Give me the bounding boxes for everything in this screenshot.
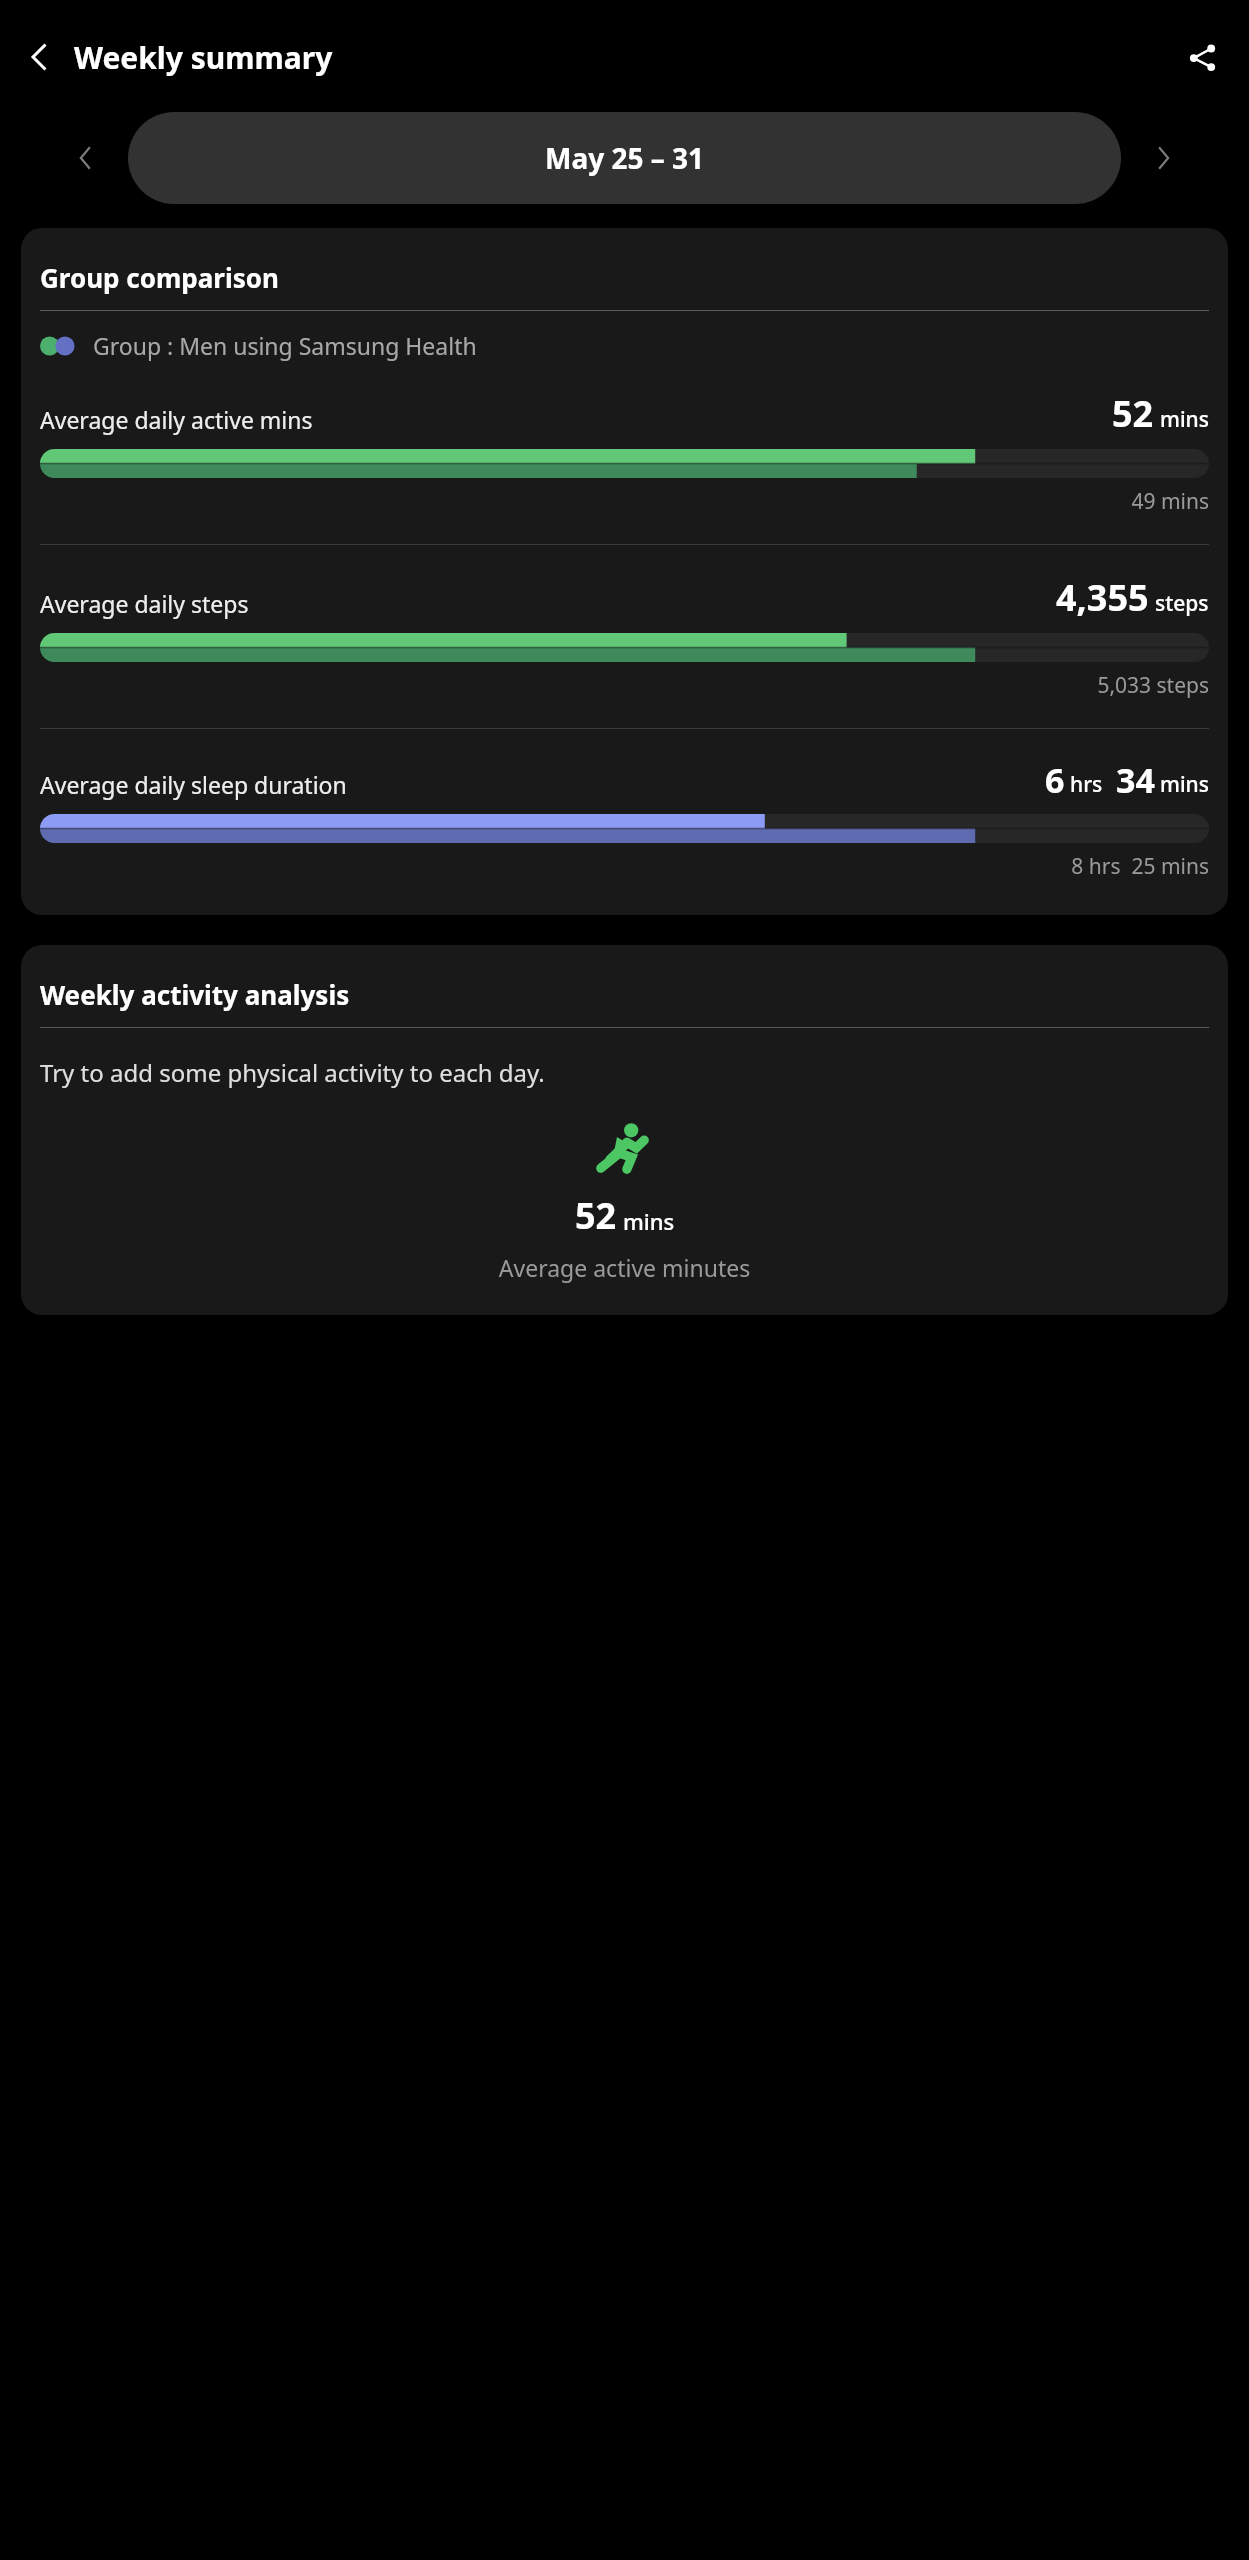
staticText: 4,355: [1056, 573, 1149, 622]
staticText: 34: [1116, 757, 1155, 803]
staticText: 8 hrs 25 mins: [40, 852, 1209, 881]
staticText: 6: [1045, 757, 1065, 803]
button[interactable]: Group comparison: [21, 228, 1228, 915]
button[interactable]: Next week: [1135, 129, 1193, 187]
staticText: hrs: [1070, 770, 1103, 799]
staticText: 49 mins: [40, 487, 1209, 516]
staticText: mins: [1160, 770, 1209, 799]
staticText: Average daily active mins: [40, 404, 1104, 435]
staticText: Average daily steps: [40, 588, 1048, 619]
button[interactable]: Back: [10, 28, 68, 86]
staticText: Group comparison: [40, 260, 279, 295]
staticText: 52: [1112, 389, 1154, 438]
staticText: mins: [1160, 405, 1209, 434]
staticText: May 25 – 31: [545, 139, 705, 177]
staticText: Average active minutes: [40, 1252, 1209, 1283]
button[interactable]: Previous week: [56, 129, 114, 187]
button[interactable]: Share: [1173, 28, 1231, 86]
button[interactable]: Weekly activity analysis: [21, 945, 1228, 1315]
staticText: Try to add some physical activity to eac…: [40, 1056, 545, 1089]
button[interactable]: May 25 – 31: [128, 112, 1121, 204]
staticText: Group : Men using Samsung Health: [93, 330, 477, 361]
staticText: Weekly activity analysis: [40, 977, 350, 1012]
staticText: Average daily sleep duration: [40, 769, 1037, 800]
staticText: Weekly summary: [74, 37, 333, 78]
staticText: mins: [623, 1206, 675, 1236]
staticText: 52: [575, 1191, 617, 1240]
staticText: 5,033 steps: [40, 671, 1209, 700]
staticText: steps: [1155, 589, 1209, 618]
